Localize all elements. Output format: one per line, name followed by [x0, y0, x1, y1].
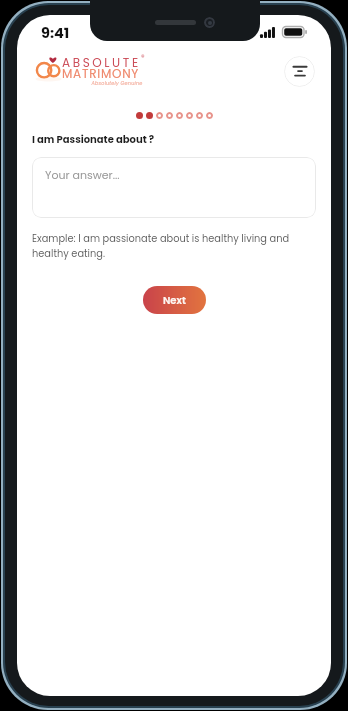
- staticText: Next: [163, 293, 186, 307]
- button[interactable]: Your answer...: [32, 157, 316, 218]
- button[interactable]: Next: [143, 286, 206, 314]
- button[interactable]: Menu: [284, 56, 315, 87]
- staticText: 9:41: [41, 23, 70, 43]
- staticText: Absolutely Genuine: [80, 80, 154, 87]
- staticText: I am Passionate about ?: [32, 132, 155, 146]
- staticText: ABSOLUTE: [62, 54, 141, 71]
- staticText: Your answer...: [45, 167, 120, 182]
- staticText: MATRIMONY: [62, 65, 140, 82]
- staticText: Example: I am passionate about is health…: [32, 232, 316, 260]
- staticText: ®: [141, 53, 145, 63]
